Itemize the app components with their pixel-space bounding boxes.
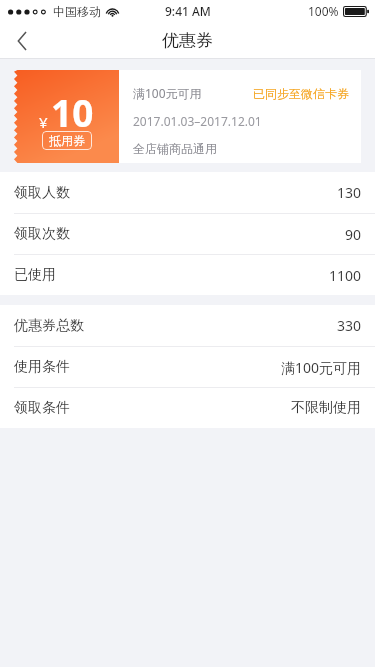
staticText: 130 <box>336 183 361 202</box>
button[interactable]: 领取次数 <box>0 214 375 254</box>
staticText: 330 <box>336 316 361 335</box>
staticText: 满100元可用 <box>280 358 361 377</box>
staticText: 优惠券 <box>162 30 213 51</box>
button[interactable]: 已使用 <box>0 255 375 295</box>
staticText: 优惠券总数 <box>14 317 84 335</box>
staticText: 2017.01.03–2017.12.01 <box>133 113 262 129</box>
staticText: 9:41 AM <box>165 3 211 19</box>
staticText: ¥ <box>39 112 48 132</box>
staticText: 10 <box>51 87 94 137</box>
staticText: 100% <box>308 3 339 19</box>
staticText: 90 <box>344 225 361 244</box>
staticText: 抵用券 <box>49 133 85 148</box>
staticText: 满100元可用 <box>133 85 202 101</box>
staticText: 已使用 <box>14 266 56 284</box>
staticText: 不限制使用 <box>291 399 361 417</box>
button[interactable]: ¥ <box>14 70 361 163</box>
staticText: 领取条件 <box>14 399 70 417</box>
staticText: 使用条件 <box>14 358 70 376</box>
staticText: 已同步至微信卡券 <box>253 86 349 101</box>
staticText: 中国移动 <box>53 4 101 19</box>
button[interactable]: 领取人数 <box>0 172 375 213</box>
staticText: 领取次数 <box>14 225 70 243</box>
staticText: 1100 <box>328 266 361 285</box>
button[interactable]: Back <box>0 22 44 59</box>
button[interactable]: 领取条件 <box>0 388 375 428</box>
staticText: 领取人数 <box>14 184 70 202</box>
button[interactable]: 优惠券总数 <box>0 305 375 346</box>
staticText: 全店铺商品通用 <box>133 141 217 156</box>
button[interactable]: 使用条件 <box>0 347 375 387</box>
